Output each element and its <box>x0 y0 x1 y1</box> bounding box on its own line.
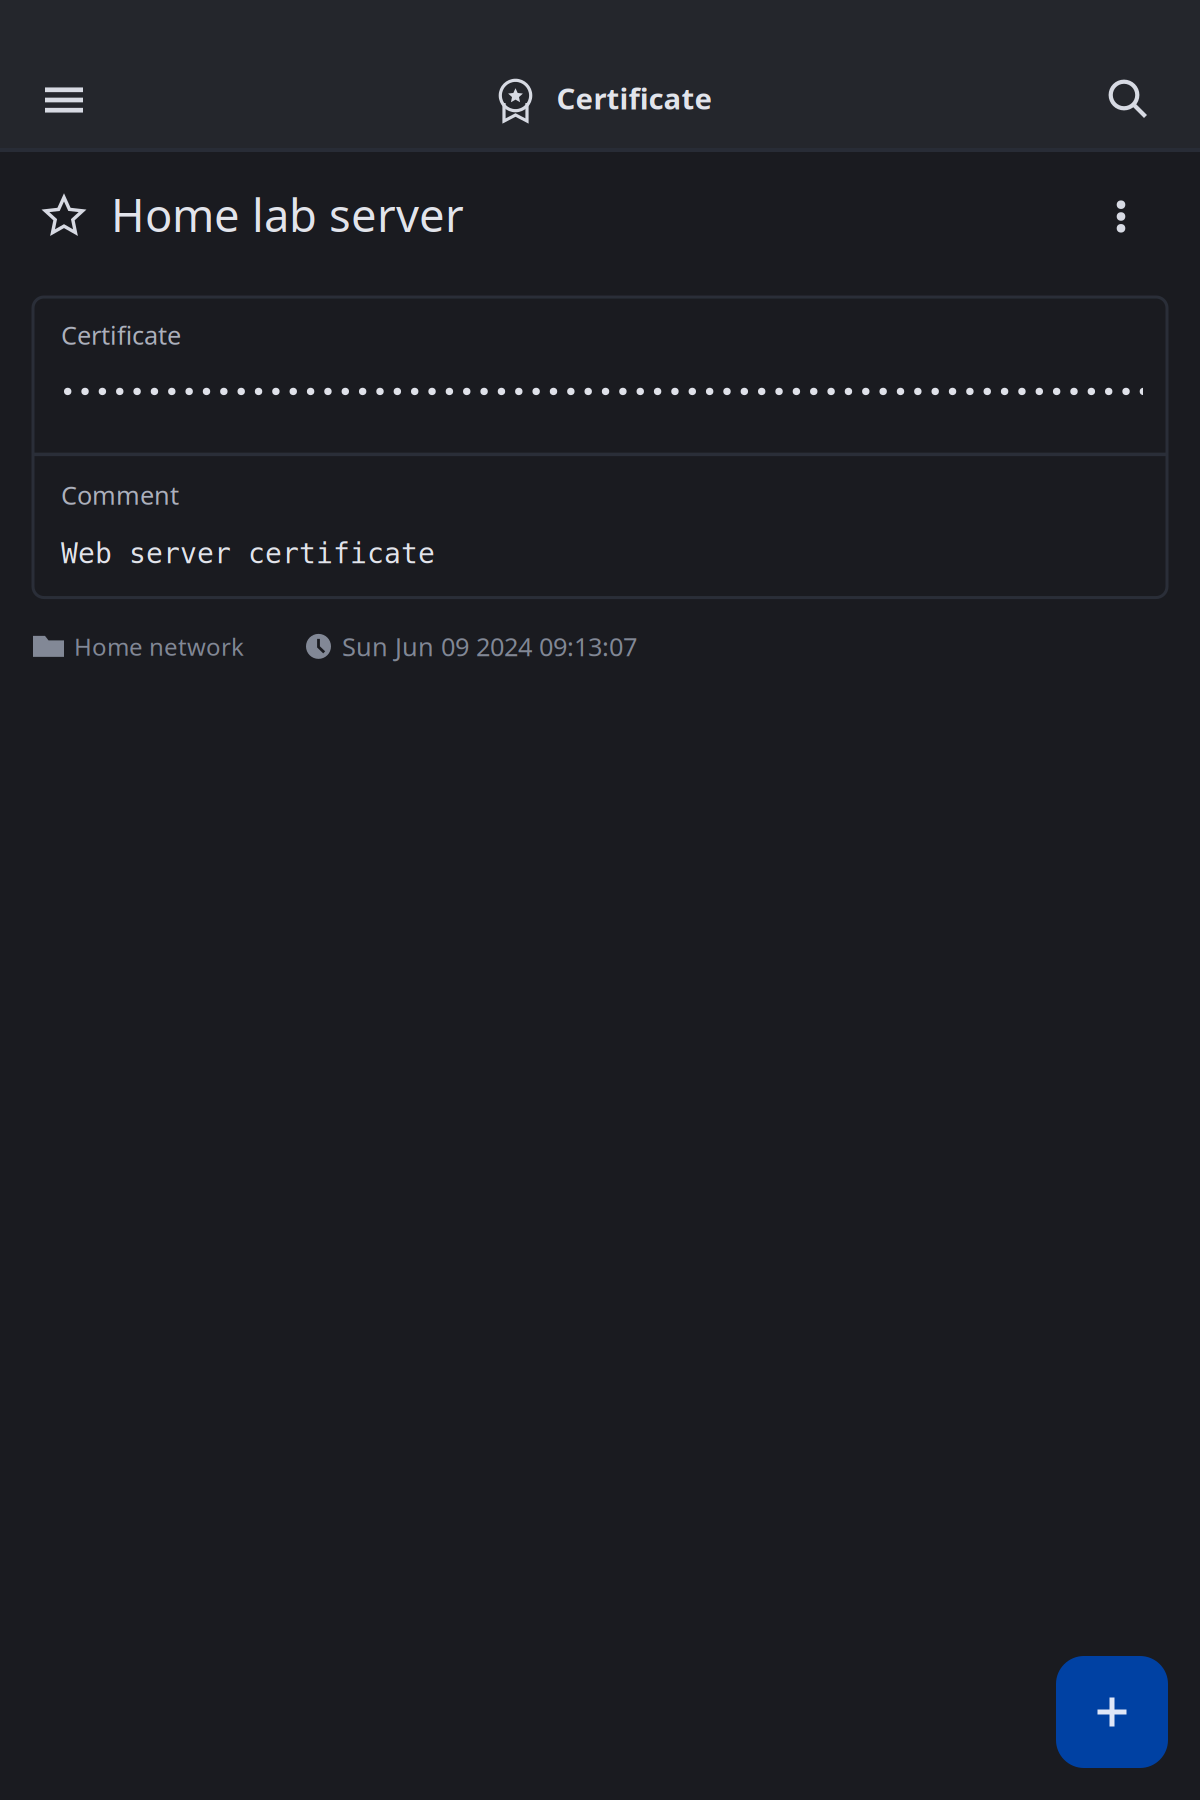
staticText: Certificate <box>61 318 181 352</box>
button[interactable]: Add entry <box>1056 1656 1168 1768</box>
button[interactable]: Menu <box>20 52 108 148</box>
button[interactable]: More options <box>1089 148 1153 297</box>
staticText: Home lab server <box>111 184 464 245</box>
button[interactable]: Favourite <box>32 148 96 297</box>
staticText: Sun Jun 09 2024 09:13:07 <box>342 630 637 663</box>
staticText: Web server certificate <box>61 538 435 570</box>
staticText: Home network <box>74 630 244 662</box>
button[interactable]: Search <box>1083 52 1175 148</box>
staticText: Comment <box>61 478 179 512</box>
staticText: Certificate <box>556 78 712 117</box>
